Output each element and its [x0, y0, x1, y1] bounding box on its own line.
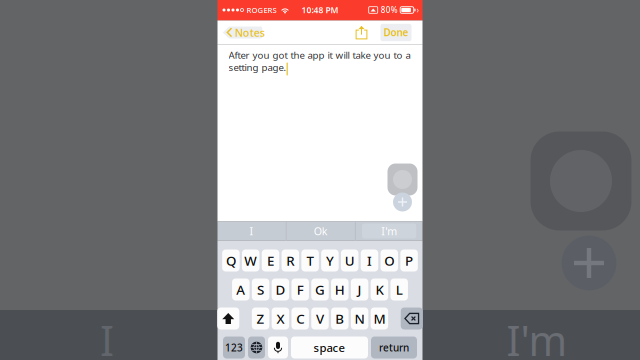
staticText: R — [286, 251, 294, 270]
button[interactable]: Delete — [401, 307, 423, 329]
button[interactable]: V — [311, 307, 329, 329]
button[interactable]: Done — [380, 24, 411, 41]
staticText: A — [236, 280, 245, 299]
button[interactable]: Dictation — [268, 336, 288, 358]
button[interactable]: N — [351, 307, 368, 329]
staticText: T — [307, 251, 314, 270]
staticText: Q — [226, 251, 236, 270]
button[interactable]: P — [400, 249, 418, 271]
button[interactable]: space — [291, 336, 368, 358]
staticText: U — [345, 251, 355, 270]
button[interactable]: U — [341, 249, 358, 271]
button[interactable]: H — [331, 278, 349, 300]
button[interactable]: S — [252, 278, 269, 300]
staticText: I'm — [381, 224, 397, 238]
button[interactable]: W — [242, 249, 259, 271]
button[interactable]: Ok — [286, 221, 355, 240]
staticText: 10:48 PM — [301, 4, 338, 16]
button[interactable]: AssistiveTouch — [387, 163, 417, 195]
button[interactable]: A — [232, 278, 250, 300]
staticText: I — [250, 224, 254, 238]
staticText: M — [373, 309, 385, 328]
button[interactable]: J — [351, 278, 368, 300]
staticText: Ok — [314, 224, 328, 238]
button[interactable]: L — [390, 278, 408, 300]
button[interactable]: Add — [393, 192, 412, 211]
button[interactable]: D — [272, 278, 289, 300]
staticText: O — [384, 251, 394, 270]
staticText: F — [297, 280, 304, 299]
button[interactable]: Q — [222, 249, 240, 271]
button[interactable]: I — [361, 249, 378, 271]
staticText: Y — [326, 251, 334, 270]
staticText: After you got the app it will take you t… — [228, 48, 410, 74]
staticText: Z — [257, 309, 265, 328]
staticText: I — [367, 251, 372, 270]
staticText: N — [355, 309, 365, 328]
staticText: I — [100, 312, 114, 360]
button[interactable]: O — [381, 249, 398, 271]
staticText: E — [267, 251, 274, 270]
staticText: P — [405, 251, 413, 270]
staticText: B — [335, 309, 344, 328]
button[interactable]: C — [291, 307, 309, 329]
staticText: I'm — [506, 312, 567, 360]
button[interactable]: E — [262, 249, 279, 271]
button[interactable]: T — [301, 249, 319, 271]
button[interactable]: Switch keyboard — [248, 336, 265, 358]
staticText: Notes — [235, 25, 265, 40]
button[interactable]: Notes — [222, 25, 262, 40]
button[interactable]: X — [272, 307, 289, 329]
button[interactable]: R — [282, 249, 299, 271]
staticText: L — [396, 280, 403, 299]
staticText: K — [375, 280, 383, 299]
button[interactable]: Y — [321, 249, 339, 271]
staticText: S — [257, 280, 264, 299]
button[interactable]: K — [371, 278, 388, 300]
button[interactable]: I'm — [356, 221, 423, 240]
staticText: › — [416, 5, 418, 15]
button[interactable]: B — [331, 307, 349, 329]
staticText: ROGERS — [246, 5, 276, 15]
button[interactable]: I — [217, 221, 286, 240]
staticText: 123 — [225, 341, 243, 354]
staticText: 80% — [381, 5, 398, 15]
staticText: J — [358, 280, 362, 299]
button[interactable]: Share — [351, 24, 371, 40]
staticText: X — [276, 309, 284, 328]
staticText: space — [313, 340, 345, 355]
button[interactable]: 123 — [223, 336, 245, 358]
button[interactable]: M — [371, 307, 388, 329]
staticText: return — [379, 341, 409, 354]
staticText: C — [296, 309, 304, 328]
button[interactable]: G — [311, 278, 329, 300]
staticText: V — [316, 309, 324, 328]
button[interactable]: return — [371, 336, 417, 358]
staticText: Done — [383, 26, 408, 39]
staticText: G — [315, 280, 325, 299]
staticText: D — [275, 280, 285, 299]
button[interactable]: F — [291, 278, 309, 300]
staticText: W — [244, 251, 257, 270]
staticText: H — [335, 280, 345, 299]
button[interactable]: Shift — [217, 307, 239, 329]
button[interactable]: Z — [252, 307, 269, 329]
